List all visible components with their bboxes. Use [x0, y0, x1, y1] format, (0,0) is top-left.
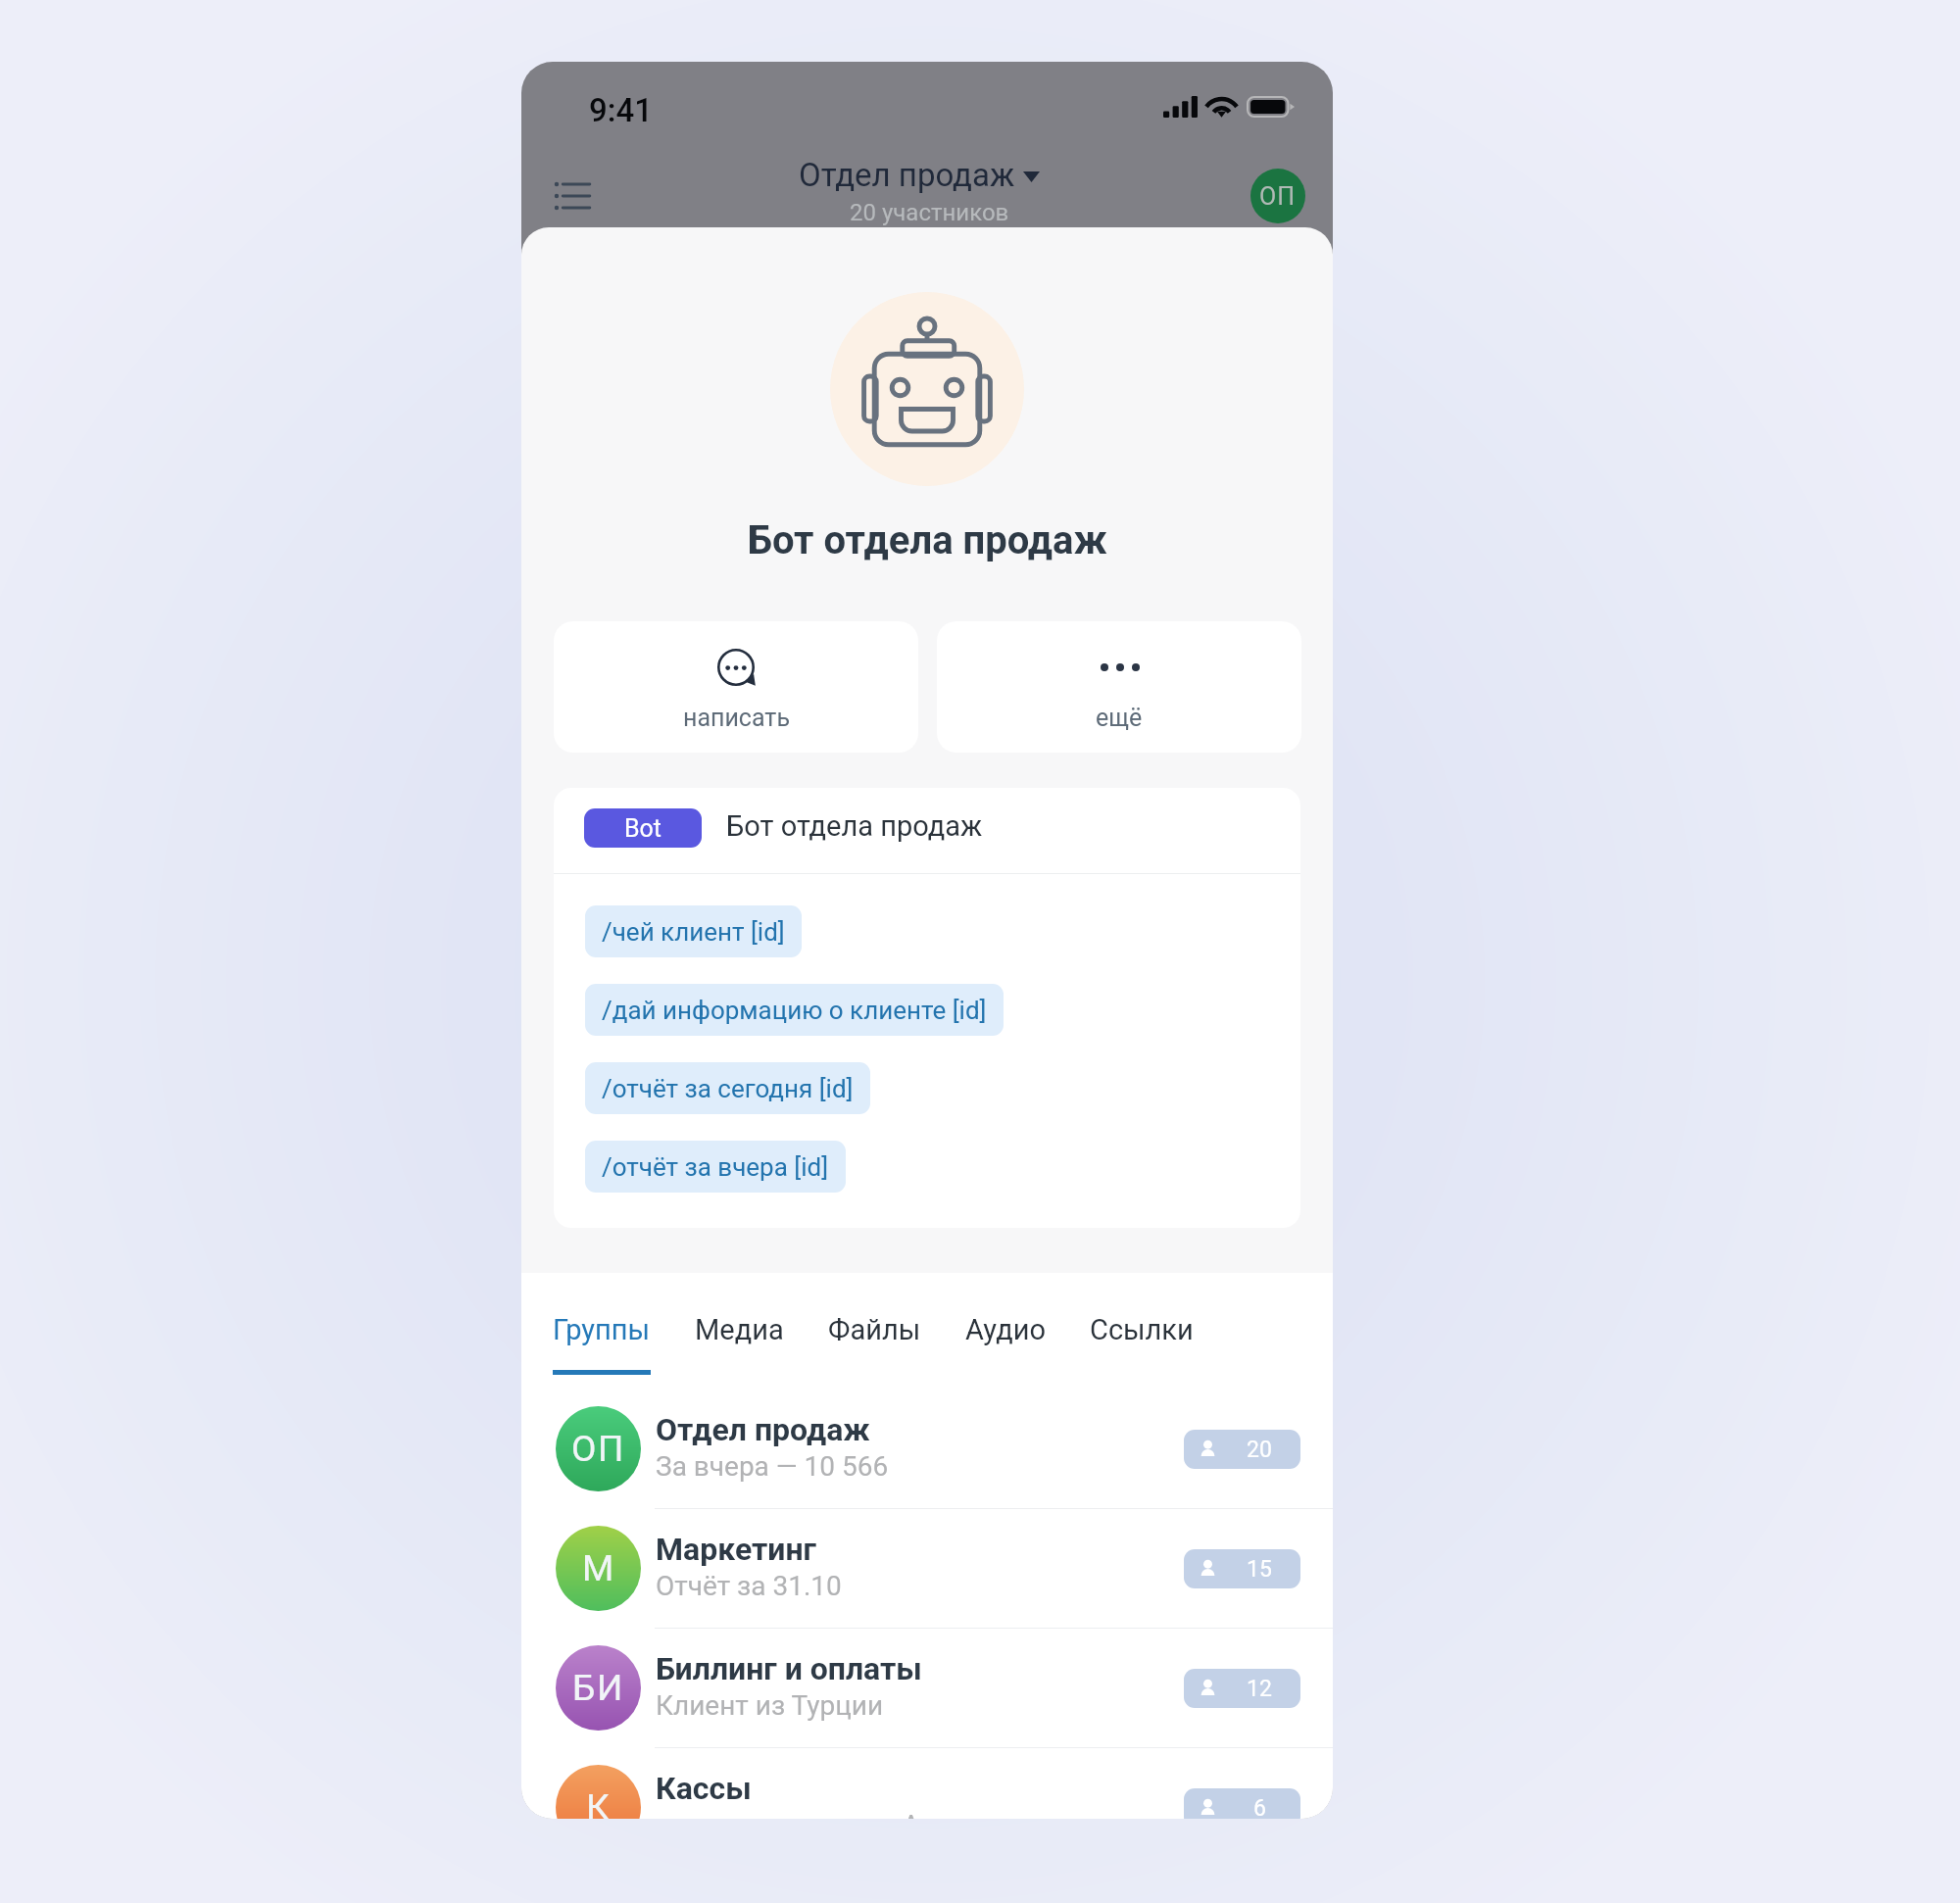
- staticText: Кассы: [656, 1770, 752, 1807]
- staticText: Маркетинг: [656, 1531, 816, 1568]
- staticText: ОП: [1259, 182, 1297, 211]
- staticText: Файлы: [828, 1313, 921, 1346]
- staticText: Бот отдела продаж: [726, 809, 983, 843]
- staticText: БИ: [572, 1667, 624, 1709]
- staticText: 20 участников: [850, 199, 1009, 226]
- staticText: Группы: [553, 1313, 651, 1346]
- button[interactable]: ОП: [521, 1390, 1333, 1508]
- button[interactable]: М: [521, 1509, 1333, 1628]
- staticText: ОП: [571, 1428, 626, 1470]
- staticText: Биллинг и оплаты: [656, 1650, 922, 1687]
- staticText: Bot: [624, 814, 662, 843]
- staticText: За вчера — 10 566: [656, 1450, 889, 1483]
- staticText: /дай информацию о клиенте [id]: [602, 996, 987, 1025]
- button[interactable]: Ссылки: [1090, 1313, 1194, 1375]
- staticText: 6: [1253, 1795, 1266, 1819]
- staticText: Аудио: [965, 1313, 1046, 1346]
- staticText: Бот отдела продаж: [748, 517, 1107, 563]
- button[interactable]: Аудио: [965, 1313, 1046, 1375]
- button[interactable]: Bot: [584, 808, 702, 848]
- button[interactable]: К: [521, 1748, 1333, 1819]
- staticText: ещё: [1096, 704, 1143, 732]
- button[interactable]: Profile: [1250, 169, 1305, 223]
- staticText: 15: [1247, 1556, 1272, 1583]
- staticText: 12: [1247, 1676, 1272, 1702]
- button[interactable]: БИ: [521, 1629, 1333, 1747]
- staticText: 9:41: [589, 91, 653, 129]
- staticText: /отчёт за вчера [id]: [602, 1152, 829, 1182]
- button[interactable]: /отчёт за сегодня [id]: [585, 1062, 870, 1114]
- staticText: /отчёт за сегодня [id]: [602, 1074, 854, 1103]
- staticText: написать: [683, 704, 790, 732]
- staticText: Отчёт за 31.10: [656, 1570, 842, 1602]
- staticText: Ссылки: [1090, 1313, 1194, 1346]
- button[interactable]: Группы: [553, 1313, 651, 1375]
- button[interactable]: Файлы: [828, 1313, 921, 1375]
- staticText: Отдел продаж: [799, 156, 1015, 194]
- button[interactable]: /дай информацию о клиенте [id]: [585, 984, 1004, 1036]
- staticText: Медиа: [695, 1313, 784, 1346]
- staticText: Клиент из Турции: [656, 1689, 884, 1722]
- staticText: Отдел продаж: [656, 1411, 870, 1448]
- button[interactable]: Медиа: [695, 1313, 784, 1375]
- button[interactable]: ещё: [937, 621, 1301, 753]
- staticText: М: [582, 1547, 615, 1589]
- button[interactable]: Menu: [543, 172, 602, 220]
- staticText: /чей клиент [id]: [602, 917, 785, 947]
- button[interactable]: /отчёт за вчера [id]: [585, 1141, 846, 1193]
- button[interactable]: /чей клиент [id]: [585, 905, 802, 957]
- staticText: К: [586, 1786, 612, 1819]
- staticText: 20: [1247, 1437, 1272, 1463]
- staticText: да, отличная идея. А во сколько сост…: [656, 1809, 1116, 1819]
- button[interactable]: написать: [554, 621, 918, 753]
- button[interactable]: Отдел продаж: [799, 156, 1040, 194]
